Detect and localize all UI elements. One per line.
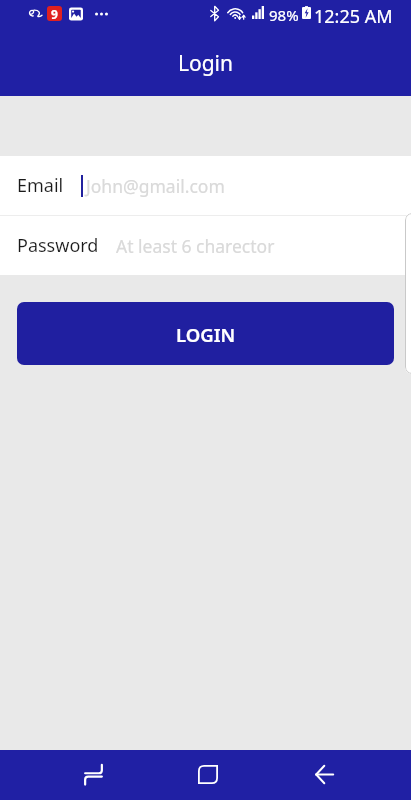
button[interactable]: Back bbox=[300, 749, 348, 799]
staticText: 12:25 AM bbox=[314, 4, 393, 29]
button[interactable]: Email bbox=[0, 156, 411, 215]
staticText: Email bbox=[17, 173, 64, 198]
staticText: LOGIN bbox=[176, 322, 236, 347]
staticText: 98% bbox=[269, 5, 299, 25]
staticText: John@gmail.com bbox=[86, 174, 225, 198]
staticText: 9 bbox=[51, 6, 58, 21]
button[interactable]: Home bbox=[184, 749, 232, 799]
button[interactable]: Recent apps bbox=[69, 749, 117, 799]
button[interactable]: LOGIN bbox=[17, 302, 394, 365]
staticText: Password bbox=[17, 233, 99, 258]
staticText: Login bbox=[178, 49, 234, 78]
button[interactable]: Password bbox=[0, 216, 411, 275]
staticText: At least 6 charector bbox=[116, 234, 275, 258]
